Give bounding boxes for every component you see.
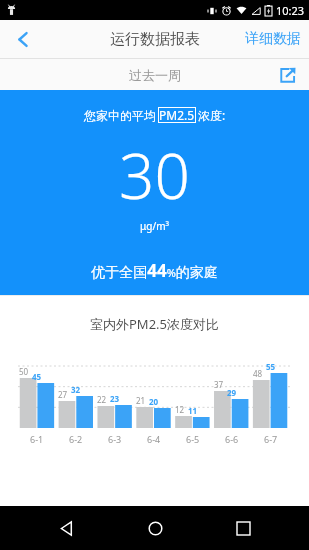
- staticText: 22: [97, 394, 107, 405]
- staticText: 运行数据报表: [110, 30, 200, 49]
- staticText: PM2.5: [159, 107, 195, 123]
- staticText: 30: [119, 133, 190, 217]
- button[interactable]: Back: [44, 506, 88, 550]
- staticText: 6-5: [186, 433, 200, 445]
- staticText: 32: [71, 384, 81, 395]
- staticText: 29: [227, 387, 237, 398]
- staticText: 21: [136, 395, 146, 406]
- staticText: 优于全国44%的家庭: [91, 259, 218, 282]
- staticText: 12: [175, 404, 185, 415]
- button[interactable]: Recent apps: [221, 506, 265, 550]
- staticText: 48: [253, 368, 263, 379]
- staticText: 37: [214, 379, 224, 390]
- button[interactable]: Back: [0, 20, 46, 58]
- staticText: 过去一周: [129, 67, 181, 83]
- staticText: 6-1: [30, 433, 44, 445]
- button[interactable]: 详细数据: [237, 20, 309, 58]
- button[interactable]: 过去一周: [119, 63, 191, 87]
- staticText: 11: [188, 405, 198, 416]
- staticText: 27: [58, 389, 68, 400]
- staticText: 您家中的平均: [84, 108, 156, 123]
- staticText: 6-2: [69, 433, 83, 445]
- button[interactable]: Share: [275, 62, 301, 88]
- staticText: 6-3: [108, 433, 122, 445]
- staticText: 23: [110, 393, 120, 404]
- staticText: 浓度:: [198, 107, 226, 123]
- staticText: 10:23: [276, 3, 305, 18]
- staticText: 室内外PM2.5浓度对比: [90, 315, 220, 333]
- staticText: 6-6: [225, 433, 239, 445]
- staticText: 50: [19, 366, 29, 377]
- staticText: 20: [149, 396, 159, 407]
- button[interactable]: Home: [133, 506, 177, 550]
- staticText: 6-7: [264, 433, 278, 445]
- staticText: 45: [32, 371, 42, 382]
- staticText: 6-4: [147, 433, 161, 445]
- staticText: 55: [266, 361, 276, 372]
- staticText: 详细数据: [245, 30, 301, 48]
- staticText: μg/m³: [140, 219, 169, 233]
